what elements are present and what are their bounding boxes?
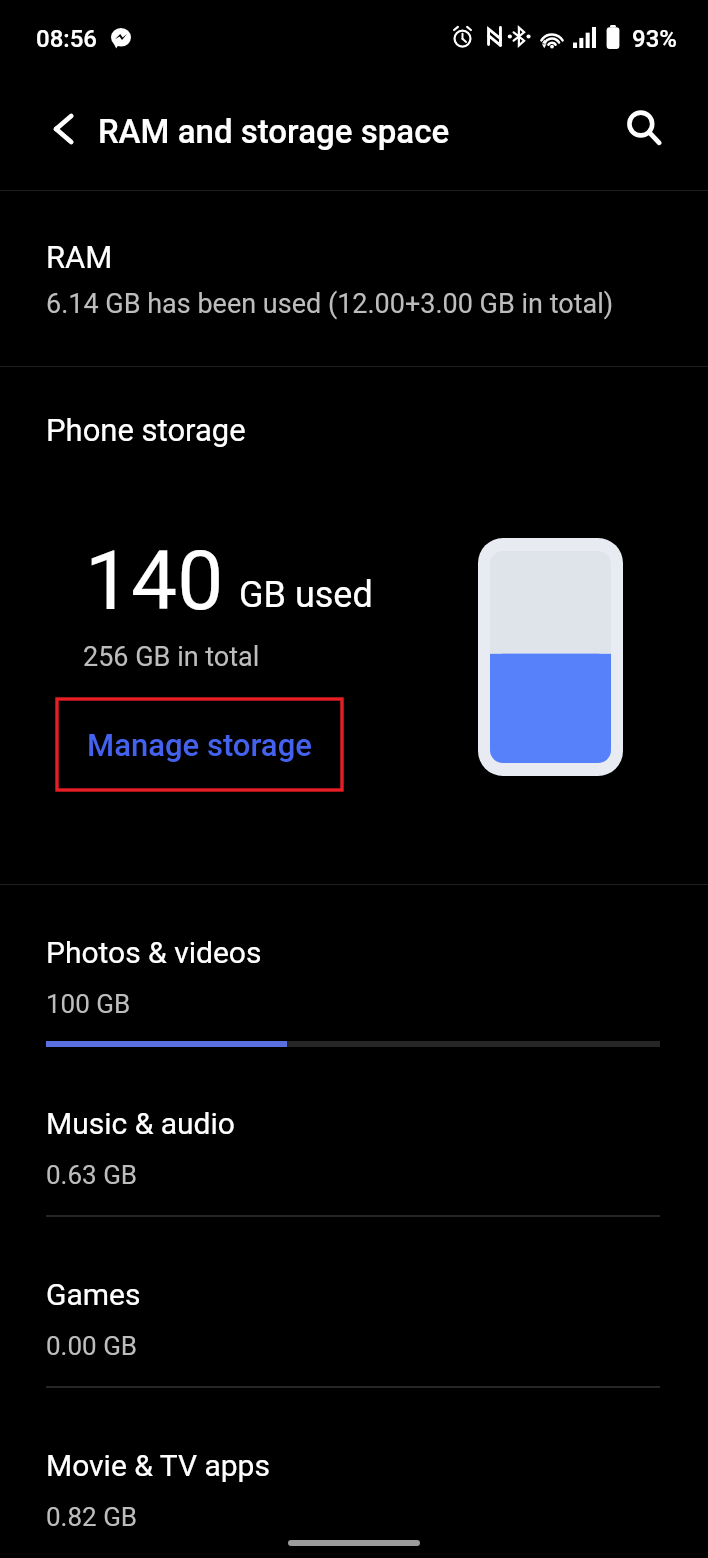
staticText: 256 GB in total <box>83 641 260 673</box>
button[interactable]: Games <box>0 1226 708 1397</box>
button[interactable]: Music & audio <box>0 1055 708 1226</box>
staticText: RAM <box>46 239 113 275</box>
button[interactable]: Back <box>27 92 101 166</box>
staticText: 6.14 GB has been used (12.00+3.00 GB in … <box>46 288 614 320</box>
staticText: Photos & videos <box>46 935 262 970</box>
staticText: Manage storage <box>87 727 312 763</box>
button[interactable]: RAM <box>0 191 708 366</box>
staticText: 08:56 <box>36 25 97 53</box>
staticText: RAM and storage space <box>98 112 450 151</box>
staticText: 0.00 GB <box>46 1331 138 1361</box>
staticText: Games <box>46 1277 141 1312</box>
staticText: 93% <box>632 25 677 53</box>
staticText: 140 <box>85 533 224 629</box>
button[interactable]: Photos & videos <box>0 884 708 1055</box>
staticText: GB used <box>239 574 373 616</box>
staticText: Movie & TV apps <box>46 1448 270 1483</box>
staticText: 0.82 GB <box>46 1502 138 1532</box>
button[interactable]: Movie & TV apps <box>0 1397 708 1558</box>
button[interactable]: Manage storage <box>57 699 342 790</box>
button[interactable]: Search <box>607 91 681 165</box>
staticText: Phone storage <box>46 412 246 448</box>
staticText: Music & audio <box>46 1106 235 1141</box>
staticText: 100 GB <box>46 989 131 1019</box>
staticText: 0.63 GB <box>46 1160 138 1190</box>
